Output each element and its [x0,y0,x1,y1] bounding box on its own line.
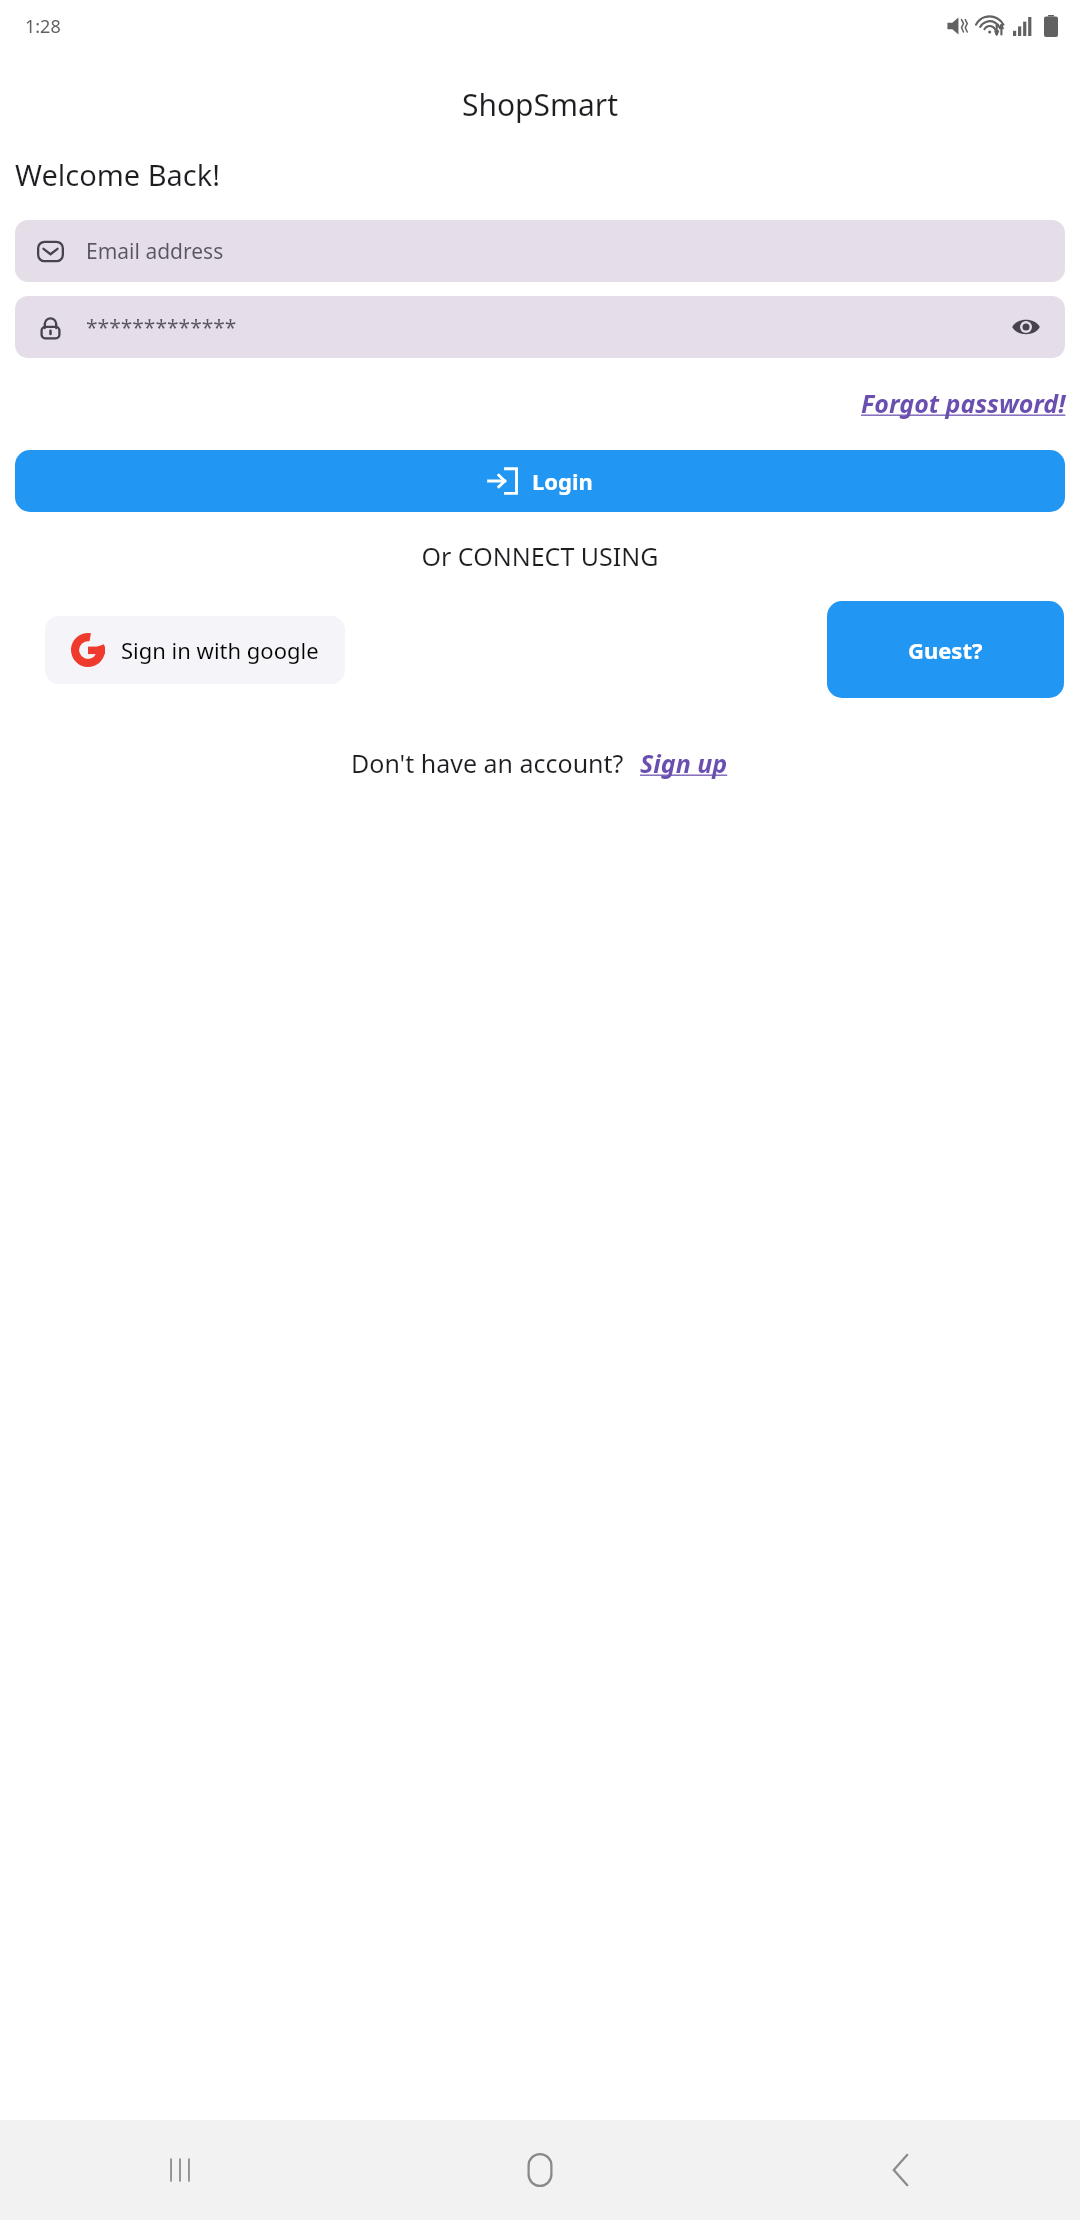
staticText: Sign in with google [121,635,319,665]
button[interactable]: Forgot password! [847,380,1080,426]
staticText: Email address [86,237,224,266]
staticText: Welcome Back! [15,155,221,194]
staticText: ShopSmart [0,84,1080,125]
staticText: Login [532,466,593,496]
staticText: Don't have an account? [351,746,624,780]
button[interactable]: Show password [1007,313,1045,341]
button[interactable]: Login [15,450,1065,512]
button[interactable]: Guest? [827,601,1064,698]
staticText: ************* [86,313,237,342]
button[interactable]: ************* [15,296,1065,358]
button[interactable]: Recent apps [0,2120,360,2220]
button[interactable]: Sign in with google [45,616,345,684]
staticText: Or CONNECT USING [0,539,1080,573]
button[interactable]: Back [720,2120,1080,2220]
staticText: Sign up [640,746,728,780]
button[interactable]: Email address [15,220,1065,282]
staticText: 1:28 [25,14,61,39]
staticText: Guest? [908,635,983,665]
button[interactable]: Home [360,2120,720,2220]
staticText: Forgot password! [861,386,1066,420]
button[interactable]: Sign up [638,742,730,784]
